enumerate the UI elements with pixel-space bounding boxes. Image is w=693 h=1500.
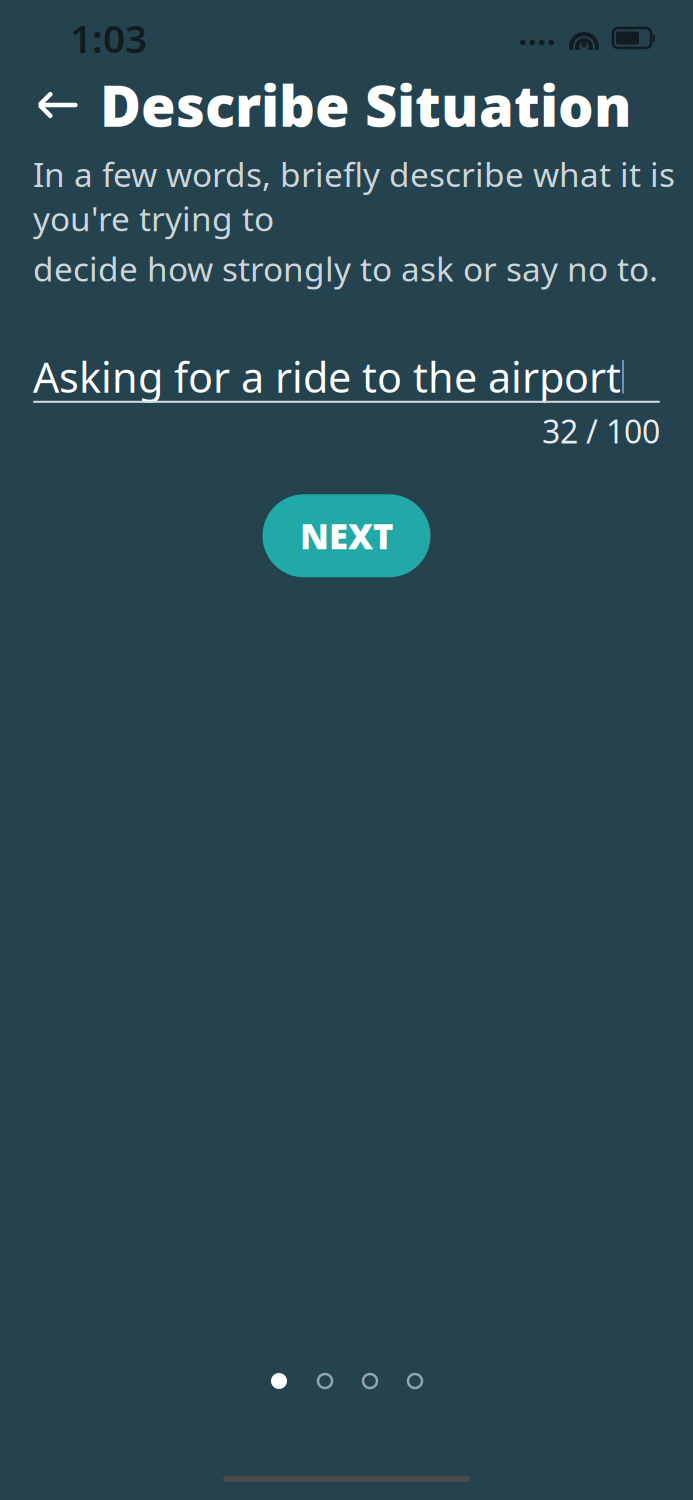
staticText: decide how strongly to ask or say no to. xyxy=(33,246,658,291)
button[interactable]: NEXT xyxy=(262,494,430,577)
button[interactable]: Back xyxy=(31,79,86,131)
staticText: Describe Situation xyxy=(100,68,632,142)
staticText: 1:03 xyxy=(70,12,147,64)
staticText: NEXT xyxy=(300,513,393,559)
staticText: 32 / 100 xyxy=(542,410,660,452)
staticText: In a few words, briefly describe what it… xyxy=(33,152,675,240)
staticText: Asking for a ride to the airport xyxy=(33,349,621,404)
